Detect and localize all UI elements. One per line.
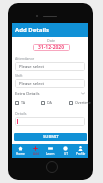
staticText: Please select [19,81,45,87]
staticText: Learn [46,152,55,156]
staticText: Overtime [75,100,91,105]
staticText: SUBMIT [43,134,59,140]
button[interactable]: DA [41,100,52,105]
staticText: Shift [15,73,23,78]
staticText: DA [47,100,52,105]
button[interactable]: Add [28,144,43,158]
button[interactable]: Learn [43,144,58,158]
button[interactable]: Home [12,144,28,158]
staticText: Add [33,152,39,156]
staticText: Details [15,111,27,116]
button[interactable]: 31-12-2020 [33,44,70,51]
button[interactable] [15,117,85,126]
staticText: Extra Details [15,91,40,96]
staticText: Profile [76,152,86,156]
button[interactable]: Extra Details [15,91,85,96]
staticText: Add Details [15,26,50,34]
button[interactable]: UT [58,144,73,158]
staticText: UT [64,152,68,156]
button[interactable]: Add Details [12,23,88,37]
button[interactable]: Profile [73,144,88,158]
button[interactable]: Please select [15,62,85,71]
staticText: Please select [19,64,45,70]
button[interactable]: SUBMIT [14,133,87,141]
button[interactable]: Overtime [69,100,91,105]
button[interactable]: TA [15,100,26,105]
staticText: Date [37,38,65,43]
staticText: TA [21,100,26,105]
staticText: Home [16,152,25,156]
button[interactable]: Please select [15,79,85,88]
staticText: Attendance [15,56,35,61]
staticText: 31-12-2020 [38,44,65,51]
